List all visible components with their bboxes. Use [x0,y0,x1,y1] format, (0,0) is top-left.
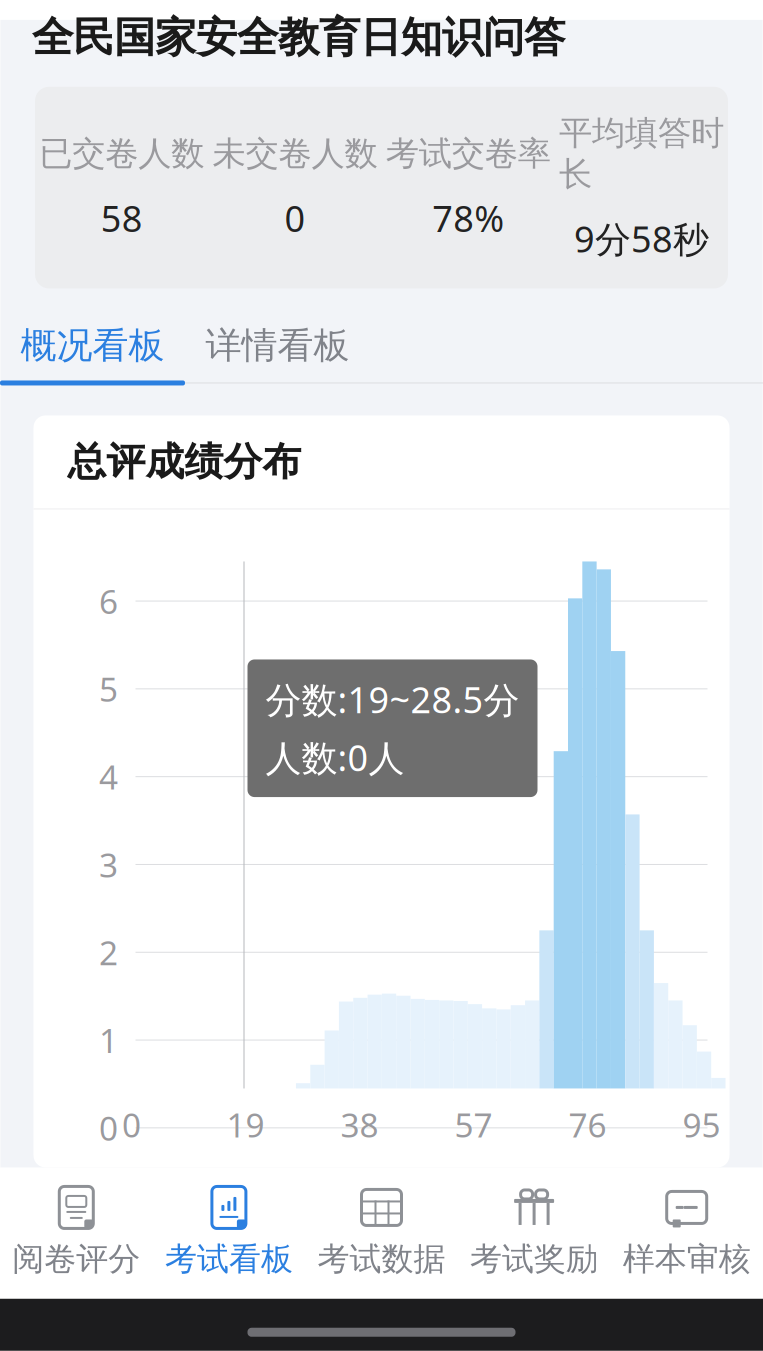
staticText: 2 [99,930,118,974]
staticText: 考试看板 [165,1239,293,1279]
staticText: 人数:0人 [265,733,404,781]
button[interactable]: 样本审核 [610,1181,763,1283]
staticText: 76 [568,1102,606,1147]
staticText: 95 [682,1102,720,1147]
staticText: 6 [99,579,118,623]
staticText: 考试奖励 [470,1239,598,1279]
staticText: 1 [99,1018,118,1062]
staticText: 5 [99,667,118,711]
staticText: 概况看板 [20,323,164,368]
staticText: 9分58秒 [574,215,709,262]
staticText: 考试交卷率 [386,133,551,174]
staticText: 详情看板 [205,323,349,368]
staticText: 平均填答时长 [559,113,724,195]
button[interactable]: 详情看板 [185,310,370,380]
staticText: 57 [454,1102,492,1147]
staticText: 4 [99,754,118,799]
staticText: 0 [122,1102,141,1147]
staticText: 已交卷人数 [39,133,204,174]
staticText: 考试数据 [317,1239,445,1279]
button[interactable]: 考试看板 [153,1181,305,1283]
staticText: 58 [101,194,143,242]
staticText: 78% [432,194,504,242]
button[interactable]: 阅卷评分 [0,1181,153,1283]
staticText: 样本审核 [623,1239,751,1279]
staticText: 0 [284,194,305,242]
button[interactable]: 概况看板 [0,310,185,380]
button[interactable]: 考试数据 [305,1181,458,1283]
staticText: 未交卷人数 [212,133,377,174]
staticText: 阅卷评分 [12,1239,140,1279]
staticText: 分数:19~28.5分 [265,675,519,723]
staticText: 0 [99,1106,118,1150]
staticText: 19 [226,1102,264,1147]
staticText: 全民国家安全教育日知识问答 [32,12,565,63]
staticText: 3 [99,842,118,887]
staticText: 38 [340,1102,378,1147]
staticText: 总评成绩分布 [67,438,301,486]
button[interactable]: 考试奖励 [458,1181,610,1283]
